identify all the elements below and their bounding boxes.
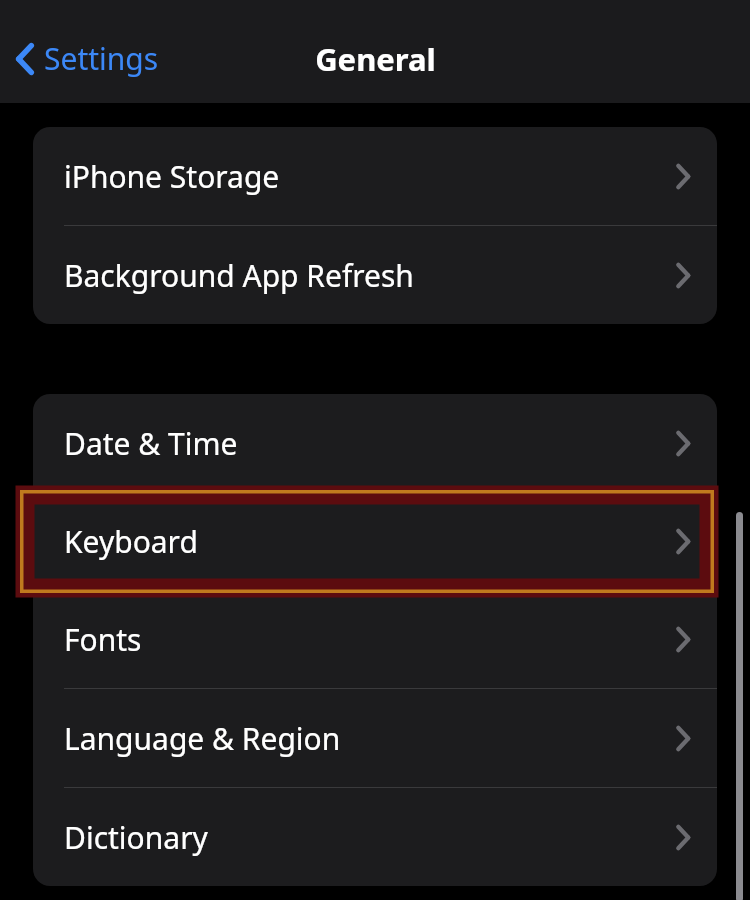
staticText: Dictionary <box>64 817 676 858</box>
staticText: Settings <box>44 38 159 79</box>
button[interactable]: Background App Refresh <box>33 226 717 324</box>
button[interactable]: Back to Settings <box>8 32 167 85</box>
button[interactable]: Date & Time <box>33 394 717 492</box>
staticText: Date & Time <box>64 423 676 464</box>
button[interactable]: Language & Region <box>33 689 717 787</box>
staticText: General <box>315 38 436 80</box>
button[interactable]: Dictionary <box>33 788 717 886</box>
staticText: Background App Refresh <box>64 255 676 296</box>
button[interactable]: iPhone Storage <box>33 127 717 225</box>
staticText: Fonts <box>64 619 676 660</box>
button[interactable]: Fonts <box>33 590 717 688</box>
staticText: Keyboard <box>64 521 676 562</box>
staticText: Language & Region <box>64 718 676 759</box>
staticText: iPhone Storage <box>64 156 676 197</box>
button[interactable]: Keyboard <box>33 492 717 590</box>
